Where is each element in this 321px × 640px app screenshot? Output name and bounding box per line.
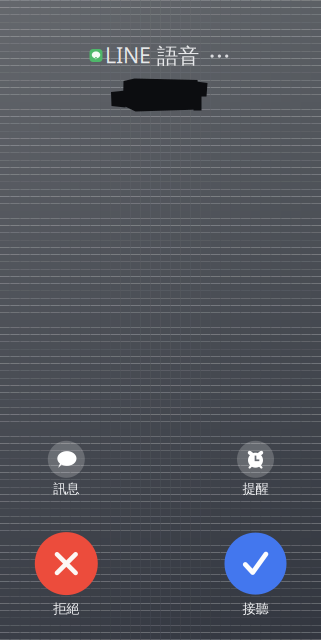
button[interactable]: 拒絕	[26, 532, 107, 640]
staticText: LINE 語音	[105, 41, 199, 69]
staticText: 接聽	[242, 601, 268, 617]
staticText: 拒絕	[53, 601, 79, 617]
button[interactable]: 訊息	[39, 441, 94, 507]
button[interactable]: 接聽	[215, 533, 295, 640]
staticText: 訊息	[53, 480, 79, 497]
button[interactable]: 提醒	[228, 441, 283, 507]
staticText: 提醒	[242, 480, 268, 497]
